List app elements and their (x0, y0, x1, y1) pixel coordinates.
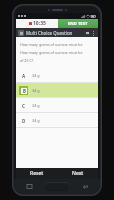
staticText: D (22, 118, 26, 124)
staticText: 34 g (32, 88, 40, 93)
button[interactable]: More options (90, 30, 96, 36)
staticText: How many grams of sucrose must be added … (20, 50, 94, 55)
button[interactable]: Reset (16, 168, 57, 179)
staticText: 34 g (32, 118, 40, 123)
button[interactable]: A (16, 68, 98, 82)
staticText: A (22, 73, 26, 79)
staticText: How many grams of sucrose must be added … (20, 42, 94, 47)
staticText: END TEST (68, 21, 88, 27)
button[interactable]: B (16, 83, 98, 97)
button[interactable]: END TEST (58, 19, 98, 28)
button[interactable]: Home (44, 182, 70, 191)
button[interactable]: Back (81, 182, 90, 191)
staticText: 34 g (32, 103, 40, 108)
staticText: C (22, 103, 25, 109)
staticText: of 25 C? (20, 58, 94, 63)
button[interactable]: D (16, 113, 98, 127)
button[interactable]: Next (57, 168, 98, 179)
staticText: Multi Choice Question (26, 30, 84, 36)
button[interactable]: 10:35 (16, 19, 58, 28)
staticText: B (23, 88, 26, 94)
button[interactable]: Recent apps (25, 182, 34, 191)
staticText: Next (72, 170, 84, 177)
staticText: Reset (30, 170, 44, 177)
button[interactable]: Bookmark (84, 30, 90, 36)
button[interactable]: C (16, 98, 98, 112)
staticText: 10:35 (33, 20, 46, 27)
staticText: 34 g (32, 73, 40, 78)
